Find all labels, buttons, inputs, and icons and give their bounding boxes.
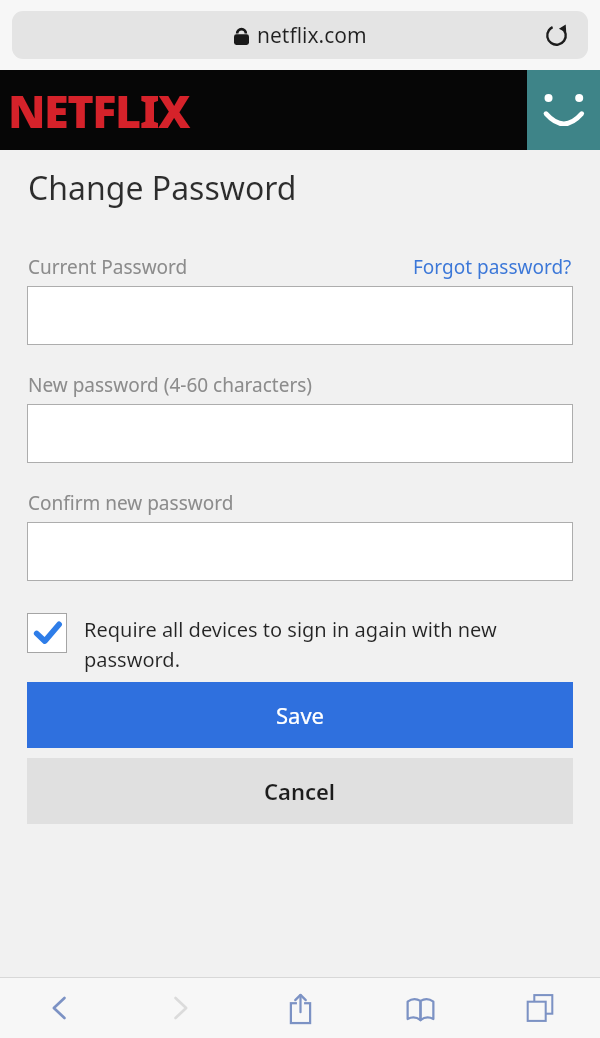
staticText: Change Password — [28, 166, 297, 210]
staticText: New password (4-60 characters) — [28, 372, 313, 398]
staticText: netflix.com — [257, 21, 367, 50]
button[interactable] — [27, 404, 573, 463]
staticText: Cancel — [264, 776, 336, 806]
button[interactable] — [27, 286, 573, 345]
button[interactable]: Require all devices to sign in again wit… — [27, 613, 573, 670]
button[interactable]: Save — [27, 682, 573, 748]
button[interactable]: Bookmarks — [360, 978, 480, 1038]
staticText: Require all devices to sign in again wit… — [84, 616, 573, 673]
button[interactable] — [27, 522, 573, 581]
staticText: Confirm new password — [28, 490, 234, 516]
button[interactable]: NETFLIX — [8, 80, 190, 141]
button[interactable]: Cancel — [27, 758, 573, 824]
button[interactable]: netflix.com — [12, 11, 588, 59]
button[interactable]: Share — [240, 978, 360, 1038]
staticText: Save — [276, 700, 325, 730]
button[interactable]: Back — [0, 978, 120, 1038]
staticText: Forgot password? — [413, 254, 572, 280]
button[interactable]: Forgot password? — [413, 254, 572, 280]
staticText: NETFLIX — [8, 80, 190, 141]
button[interactable]: Reload page — [536, 15, 576, 55]
staticText: Current Password — [28, 254, 188, 280]
button[interactable]: Profile — [527, 70, 600, 150]
button[interactable]: Tabs — [480, 978, 600, 1038]
